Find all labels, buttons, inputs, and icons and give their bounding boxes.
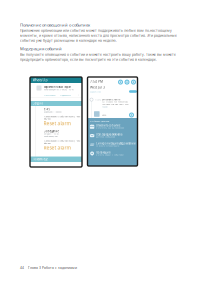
staticText: Напоминание о событии позже, чем: [43, 115, 80, 118]
button[interactable]: Ответить: [129, 112, 134, 117]
staticText: WhatsUp: [32, 78, 47, 82]
staticText: обычно: [43, 141, 50, 145]
staticText: Геолокация: [96, 151, 110, 154]
button[interactable]: Синхронизация уведомлений: [87, 141, 137, 149]
button[interactable]: Отменить событие: [87, 123, 137, 131]
staticText: Конференция на 3 числа, 10:45: [43, 88, 73, 91]
staticText: 7:54 PM: [94, 98, 101, 101]
staticText: Kate: [102, 113, 106, 116]
staticText: Совещание: [43, 129, 58, 133]
staticText: со всеми устройствами: [96, 144, 119, 147]
staticText: 8:45: [43, 107, 50, 111]
staticText: Reset alarm: [43, 144, 70, 151]
button[interactable]: Действие: [131, 80, 136, 85]
staticText: Показать ещё: [32, 157, 47, 161]
staticText: доступно сообщение: [96, 135, 115, 138]
staticText: конференц-зал: [43, 134, 57, 138]
staticText: Напоминание о событии позже, чем: [43, 139, 80, 142]
staticText: Поделиться: [59, 93, 70, 97]
staticText: Reset alarm: [43, 120, 70, 127]
staticText: Будильник • звонок: [43, 110, 61, 113]
staticText: Получение оповещений о событиях: [20, 22, 90, 28]
staticText: Watch list: [90, 90, 101, 93]
staticText: ready!: [102, 105, 108, 108]
staticText: Посмотреть: [43, 93, 55, 97]
staticText: Вы получаете оповещения о событии и може…: [20, 52, 176, 62]
staticText: Приложение организации или события может…: [20, 28, 177, 43]
staticText: Глава 3 Работа с заданиями: [28, 265, 77, 270]
staticText: Wed Jul 3: [90, 85, 105, 89]
staticText: @Nathan Charlie: [102, 98, 120, 101]
staticText: USB-зарядка включена: [96, 133, 122, 136]
staticText: Выберите действие: [90, 119, 109, 123]
staticText: и отметить как выполненное: [96, 126, 124, 129]
staticText: Сегодня: [32, 102, 42, 105]
button[interactable]: Действие: [124, 80, 129, 85]
button[interactable]: Действие: [118, 80, 123, 85]
staticText: обычно: [43, 117, 50, 120]
staticText: You have the day until you: [102, 103, 128, 106]
staticText: 44: [20, 265, 24, 270]
staticText: Синхронизация уведомлений: [96, 142, 136, 145]
button[interactable]: Геолокация: [87, 150, 137, 158]
staticText: All tickets for Tomorrow: [102, 100, 128, 103]
staticText: Модерация событий: [20, 46, 62, 51]
button[interactable]: USB-зарядка включена: [87, 132, 137, 140]
staticText: 7:54 PM: [90, 79, 103, 84]
staticText: Отменить событие: [96, 124, 120, 127]
staticText: Сегодня • 10:30: [43, 132, 58, 135]
staticText: и места рядом с событием: [96, 153, 124, 156]
staticText: Маркетинговый отдел: [43, 85, 70, 89]
